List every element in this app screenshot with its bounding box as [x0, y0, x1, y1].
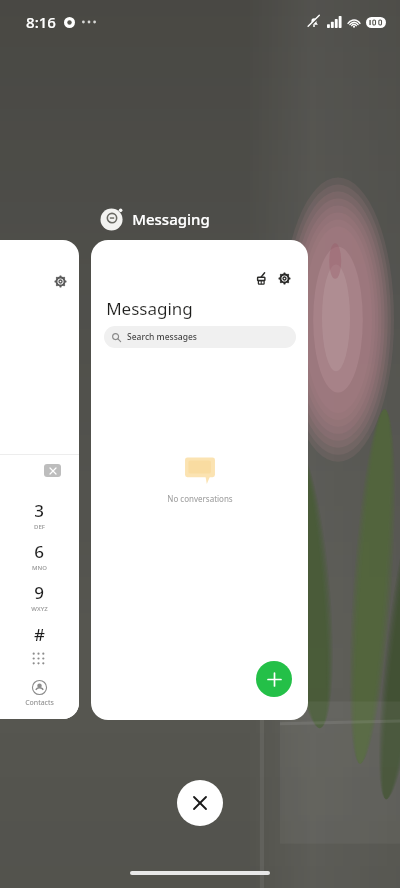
staticText: Search messages [127, 331, 197, 343]
button[interactable]: 6 [20, 540, 58, 572]
staticText: 3 [34, 499, 44, 522]
staticText: 9 [34, 581, 44, 604]
staticText: No conversations [167, 493, 233, 504]
button[interactable]: 3 [20, 499, 58, 531]
staticText: Messaging [106, 297, 193, 320]
button[interactable]: Clean up [249, 266, 273, 290]
button[interactable]: Messaging recent task [91, 240, 308, 720]
button[interactable]: Settings [50, 271, 70, 291]
staticText: WXYZ [31, 605, 48, 613]
staticText: Contacts [25, 698, 54, 708]
button[interactable]: Keypad [25, 645, 51, 671]
staticText: 6 [34, 540, 44, 563]
button[interactable]: Contacts [20, 680, 58, 708]
staticText: 8:16 [26, 12, 56, 32]
staticText: Messaging [132, 209, 210, 229]
staticText: # [34, 623, 45, 646]
button[interactable]: Backspace [44, 464, 61, 477]
staticText: DEF [34, 523, 45, 531]
button[interactable]: New conversation [256, 661, 292, 697]
button[interactable]: Phone recent task [0, 240, 79, 719]
staticText: MNO [32, 564, 47, 572]
button[interactable]: Search messages [104, 326, 296, 348]
button[interactable]: Clear all recent apps [177, 780, 223, 826]
button[interactable]: 9 [20, 581, 58, 613]
button[interactable]: Settings [272, 266, 296, 290]
button[interactable]: # [20, 623, 58, 646]
